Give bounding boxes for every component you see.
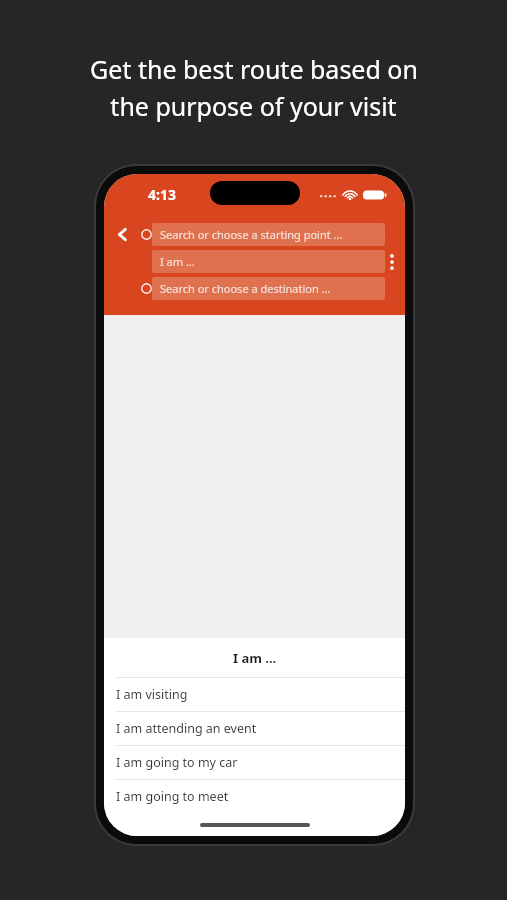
staticText: I am going to my car <box>116 754 238 771</box>
button[interactable]: I am going to meet <box>104 780 405 813</box>
button[interactable]: I am going to my car <box>104 746 405 779</box>
staticText: I am ... <box>160 254 195 269</box>
button[interactable]: Search or choose a destination ... <box>152 277 385 300</box>
button[interactable]: I am attending an event <box>104 712 405 745</box>
staticText: I am going to meet <box>116 788 229 805</box>
staticText: Get the best route based on <box>90 52 418 86</box>
staticText: Search or choose a starting point ... <box>160 227 343 242</box>
staticText: Search or choose a destination ... <box>160 281 331 296</box>
button[interactable]: I am ... <box>152 250 385 273</box>
button[interactable]: Back <box>110 222 134 246</box>
button[interactable]: I am visiting <box>104 678 405 711</box>
staticText: I am visiting <box>116 686 188 703</box>
staticText: I am ... <box>233 649 277 667</box>
button[interactable]: Search or choose a starting point ... <box>152 223 385 246</box>
staticText: the purpose of your visit <box>110 89 397 123</box>
staticText: I am attending an event <box>116 720 257 737</box>
button[interactable]: Location marker <box>136 278 156 298</box>
button[interactable]: More options <box>381 248 403 276</box>
button[interactable]: Location marker <box>136 224 156 244</box>
staticText: 4:13 <box>148 185 176 204</box>
